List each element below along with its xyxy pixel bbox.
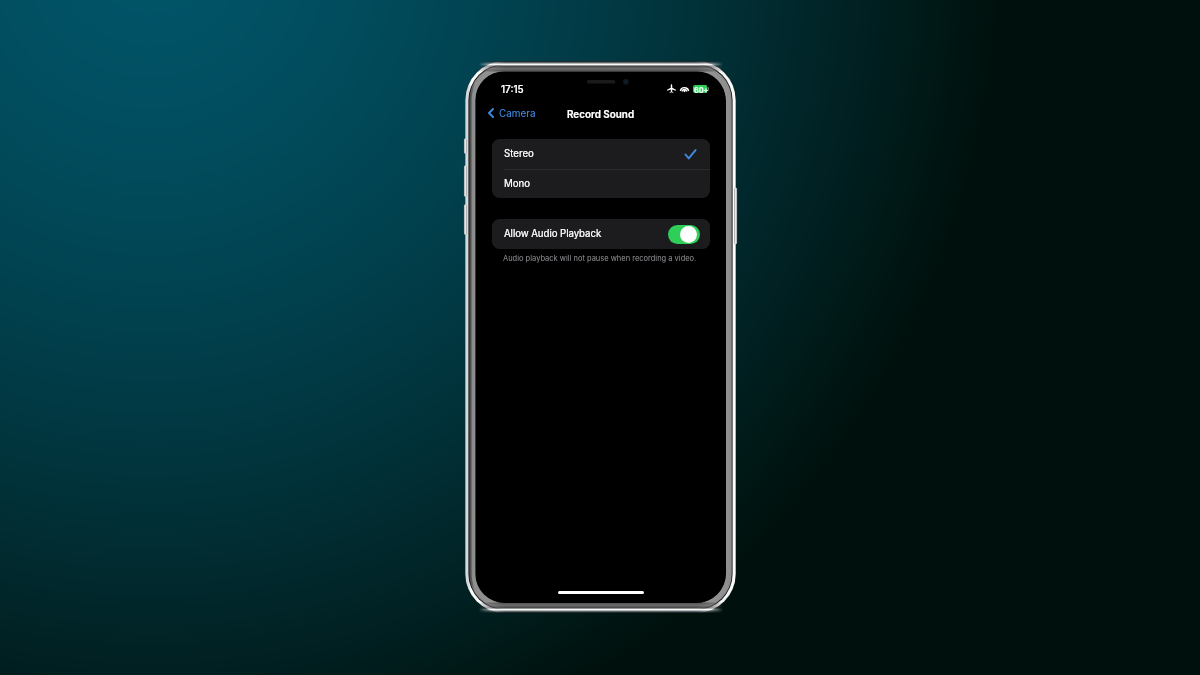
- staticText: Allow Audio Playback: [504, 228, 602, 240]
- other: Battery 60 percent: [693, 85, 709, 93]
- button[interactable]: Mono: [492, 170, 710, 198]
- button[interactable]: Stereo: [492, 139, 710, 169]
- staticText: 17:15: [501, 83, 524, 95]
- button[interactable]: Allow Audio Playback toggle: [668, 225, 700, 244]
- staticText: Audio playback will not pause when recor…: [503, 254, 697, 263]
- staticText: Record Sound: [567, 108, 635, 120]
- button[interactable]: Camera: [483, 101, 542, 125]
- staticText: 60+: [694, 86, 709, 94]
- staticText: Mono: [504, 178, 531, 190]
- staticText: Stereo: [504, 148, 534, 160]
- staticText: Camera: [499, 107, 536, 119]
